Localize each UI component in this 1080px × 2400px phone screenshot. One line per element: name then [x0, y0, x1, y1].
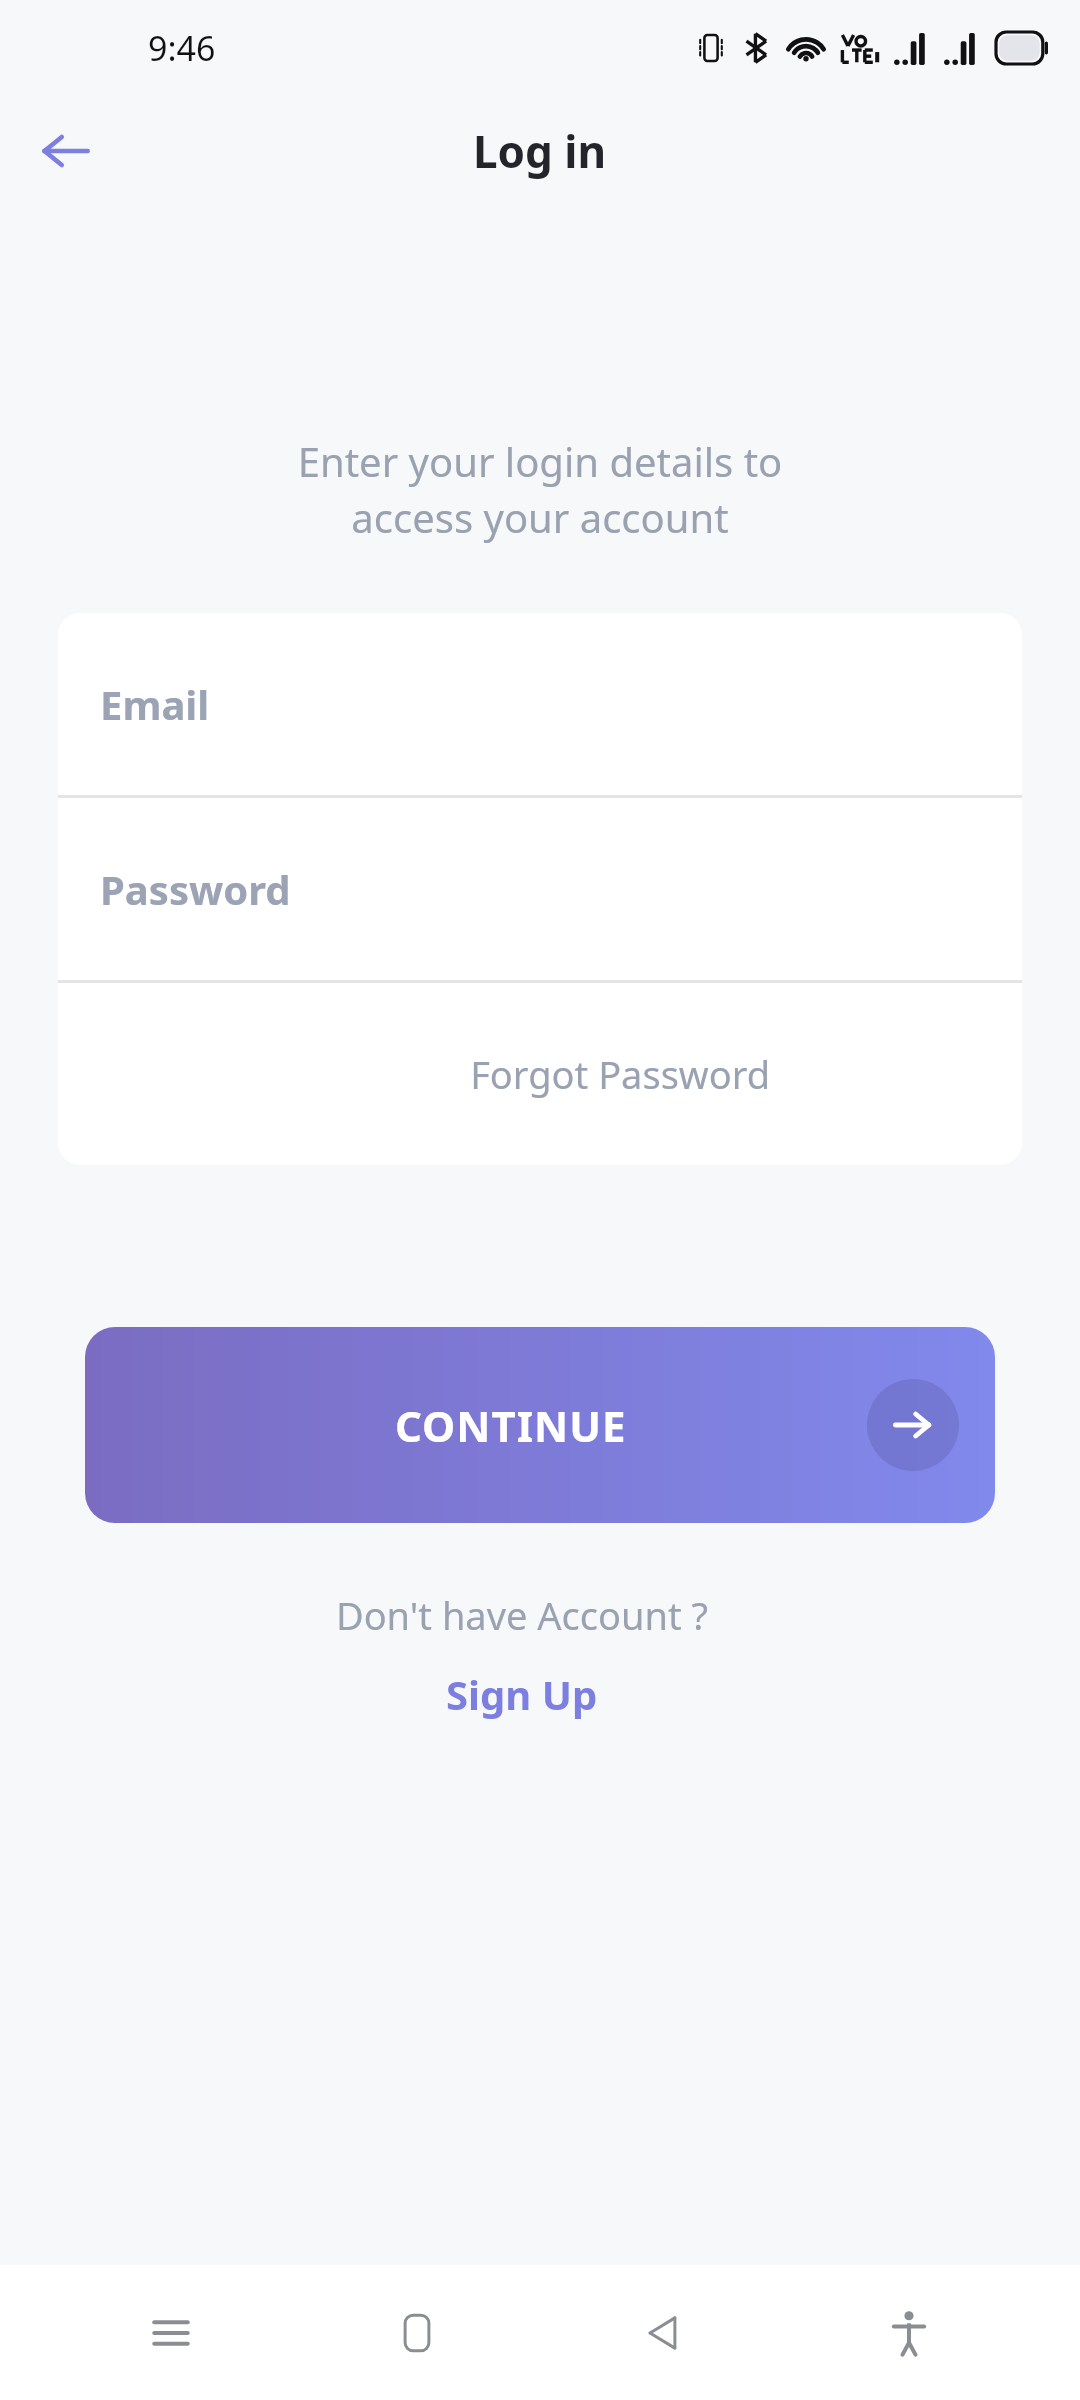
staticText: 9:46 — [148, 25, 216, 71]
staticText: Sign Up — [446, 1667, 598, 1721]
button[interactable]: Back — [588, 2265, 738, 2400]
staticText: Forgot Password — [470, 1048, 770, 1100]
staticText: Email — [100, 677, 210, 731]
staticText: Enter your login details to access your … — [60, 434, 1020, 545]
button[interactable]: CONTINUE — [85, 1327, 995, 1523]
staticText: Don't have Account ? — [0, 1589, 1044, 1641]
button[interactable]: Accessibility — [834, 2265, 984, 2400]
button[interactable]: Forgot Password — [58, 983, 1022, 1165]
button[interactable]: Sign Up — [436, 1663, 608, 1725]
button[interactable]: Home — [342, 2265, 492, 2400]
button[interactable]: Email — [58, 613, 1022, 795]
staticText: Log in — [473, 121, 607, 181]
button[interactable]: Password — [58, 798, 1022, 980]
button[interactable]: Recent apps — [96, 2265, 246, 2400]
staticText: Password — [100, 862, 291, 916]
staticText: CONTINUE — [395, 1397, 627, 1454]
button[interactable]: Back — [30, 116, 100, 186]
